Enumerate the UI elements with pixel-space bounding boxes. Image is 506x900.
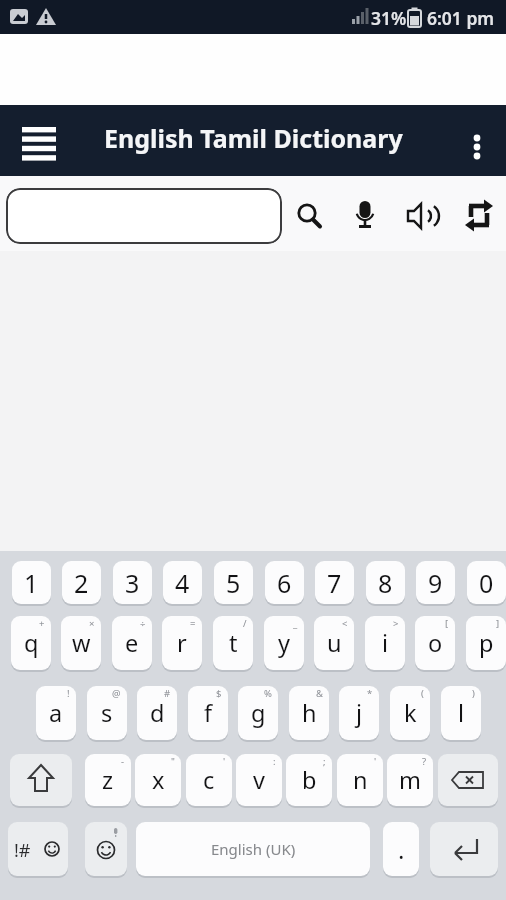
staticText: x — [152, 764, 165, 796]
staticText: > — [393, 617, 399, 630]
staticText: " — [171, 755, 175, 768]
staticText: q — [24, 627, 39, 659]
staticText: : — [273, 755, 276, 768]
staticText: b — [302, 764, 317, 796]
staticText: [ — [445, 617, 449, 630]
button[interactable]: q — [11, 616, 51, 670]
button[interactable]: g — [238, 686, 278, 740]
button[interactable]: m — [387, 754, 433, 806]
button[interactable]: k — [390, 686, 430, 740]
staticText: ; — [323, 755, 326, 768]
staticText: 2 — [74, 566, 89, 600]
staticText: 8 — [378, 566, 393, 600]
button[interactable]: s — [87, 686, 127, 740]
staticText: / — [243, 617, 247, 630]
staticText: 1 — [24, 566, 39, 600]
staticText: = — [190, 617, 196, 630]
button[interactable]: 4 — [163, 561, 202, 604]
staticText: v — [253, 764, 265, 796]
staticText: % — [264, 687, 272, 700]
staticText: j — [356, 697, 363, 729]
staticText: h — [302, 697, 317, 729]
staticText: $ — [216, 687, 222, 700]
button[interactable] — [14, 121, 64, 167]
button[interactable] — [8, 822, 68, 876]
staticText: 6 — [277, 566, 292, 600]
button[interactable]: r — [162, 616, 202, 670]
button[interactable]: 5 — [214, 561, 253, 604]
button[interactable] — [290, 196, 330, 236]
button[interactable]: 7 — [315, 561, 354, 604]
button[interactable] — [430, 822, 498, 876]
button[interactable] — [136, 822, 370, 876]
staticText: _ — [293, 617, 298, 630]
button[interactable]: t — [213, 616, 253, 670]
button[interactable]: 3 — [113, 561, 152, 604]
button[interactable]: a — [36, 686, 76, 740]
button[interactable]: u — [314, 616, 354, 670]
staticText: t — [229, 627, 238, 659]
staticText: 5 — [226, 566, 241, 600]
button[interactable] — [6, 188, 282, 244]
staticText: l — [458, 697, 465, 729]
button[interactable]: p — [466, 616, 506, 670]
button[interactable]: d — [137, 686, 177, 740]
button[interactable]: e — [112, 616, 152, 670]
staticText: f — [204, 697, 213, 729]
button[interactable]: 9 — [416, 561, 455, 604]
button[interactable]: x — [135, 754, 181, 806]
staticText: & — [316, 687, 323, 700]
button[interactable] — [10, 754, 72, 806]
button[interactable]: 2 — [62, 561, 101, 604]
button[interactable]: j — [339, 686, 379, 740]
button[interactable] — [438, 754, 498, 806]
staticText: # — [164, 687, 171, 700]
staticText: English (UK) — [211, 839, 296, 859]
button[interactable] — [85, 822, 127, 876]
staticText: + — [39, 617, 45, 630]
button[interactable]: f — [188, 686, 228, 740]
button[interactable]: 1 — [12, 561, 51, 604]
button[interactable]: . — [383, 822, 419, 876]
button[interactable]: c — [186, 754, 232, 806]
staticText: i — [382, 627, 389, 659]
button[interactable]: 6 — [265, 561, 304, 604]
button[interactable]: y — [264, 616, 304, 670]
button[interactable]: l — [441, 686, 481, 740]
staticText: m — [399, 764, 421, 796]
staticText: w — [72, 627, 91, 659]
staticText: @ — [112, 687, 121, 700]
staticText: r — [177, 627, 187, 659]
staticText: g — [251, 697, 266, 729]
staticText: 31% — [371, 6, 407, 30]
button[interactable]: 0 — [467, 561, 506, 604]
button[interactable]: z — [85, 754, 131, 806]
staticText: o — [428, 627, 443, 659]
staticText: n — [353, 764, 368, 796]
button[interactable]: i — [365, 616, 405, 670]
staticText: ! — [67, 687, 70, 700]
staticText: d — [150, 697, 165, 729]
button[interactable] — [400, 195, 444, 237]
staticText: < — [342, 617, 348, 630]
button[interactable]: w — [61, 616, 101, 670]
staticText: . — [398, 833, 405, 866]
staticText: 9 — [428, 566, 443, 600]
button[interactable]: o — [415, 616, 455, 670]
staticText: 4 — [175, 566, 190, 600]
staticText: * — [367, 687, 373, 700]
button[interactable] — [345, 194, 385, 238]
staticText: 0 — [479, 566, 494, 600]
button[interactable]: v — [236, 754, 282, 806]
button[interactable]: n — [337, 754, 383, 806]
button[interactable] — [458, 194, 502, 238]
staticText: ( — [421, 687, 424, 700]
button[interactable]: 8 — [366, 561, 405, 604]
button[interactable]: b — [286, 754, 332, 806]
staticText: k — [404, 697, 417, 729]
button[interactable]: h — [289, 686, 329, 740]
button[interactable] — [456, 121, 498, 173]
staticText: 7 — [327, 566, 342, 600]
staticText: 3 — [125, 566, 140, 600]
staticText: z — [102, 764, 114, 796]
